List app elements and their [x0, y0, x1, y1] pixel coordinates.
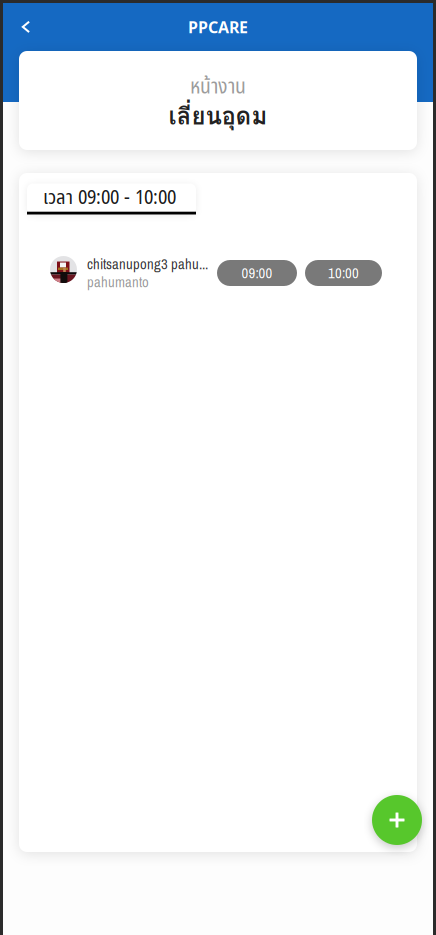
staticText: PPCARE [188, 16, 248, 38]
staticText: 10:00 [328, 263, 359, 283]
staticText: pahumanto [87, 272, 149, 292]
staticText: เวลา 09:00 - 10:00 [43, 183, 176, 213]
staticText: chitsanupong3 pahu... [87, 254, 208, 274]
staticText: 09:00 [241, 263, 272, 283]
staticText: หน้างาน [190, 71, 246, 103]
staticText: เลี่ยนอุดม [168, 97, 267, 135]
button[interactable]: Back [5, 8, 47, 46]
button[interactable]: chitsanupong3 pahu... [50, 250, 405, 296]
button[interactable]: เวลา 09:00 - 10:00 [27, 183, 196, 214]
button[interactable]: Add [372, 795, 422, 845]
